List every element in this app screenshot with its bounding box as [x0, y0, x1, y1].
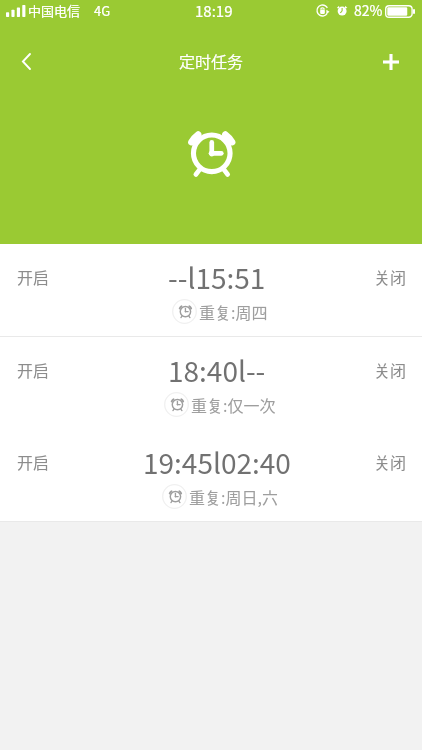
staticText: 定时任务 — [179, 49, 244, 72]
staticText: 重复:周日,六 — [189, 485, 278, 508]
staticText: 18:19 — [195, 0, 233, 22]
button[interactable]: 开启 — [0, 429, 422, 522]
staticText: 关闭 — [374, 265, 407, 288]
button[interactable]: Back — [2, 37, 50, 85]
staticText: 开启 — [17, 450, 50, 473]
staticText: 重复:仅一次 — [191, 393, 276, 416]
staticText: 19:45l02:40 — [143, 442, 291, 483]
staticText: 开启 — [17, 265, 50, 288]
staticText: 关闭 — [374, 450, 407, 473]
button[interactable]: 开启 — [0, 337, 422, 430]
staticText: 4G — [94, 1, 111, 20]
staticText: 82% — [354, 0, 383, 20]
button[interactable]: 开启 — [0, 244, 422, 337]
staticText: --l15:51 — [168, 257, 266, 298]
button[interactable]: Add alarm — [367, 38, 415, 86]
staticText: 中国电信 — [28, 1, 81, 20]
staticText: 开启 — [17, 358, 50, 381]
staticText: 重复:周四 — [199, 300, 268, 323]
staticText: 关闭 — [374, 358, 407, 381]
staticText: 18:40l-- — [168, 350, 266, 391]
